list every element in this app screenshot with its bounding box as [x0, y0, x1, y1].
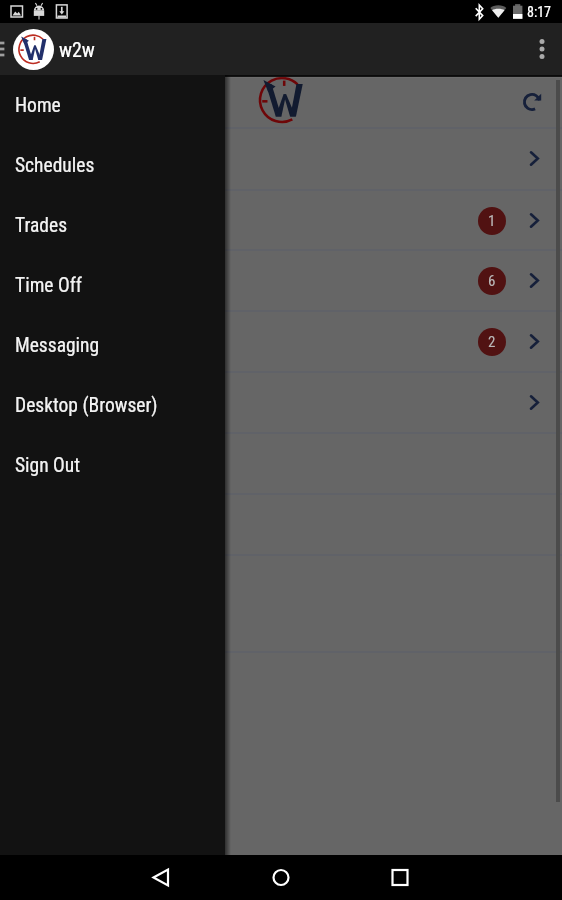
staticText: Messaging: [15, 334, 100, 357]
staticText: 8:17: [527, 4, 552, 20]
button[interactable]: More options: [514, 25, 562, 73]
button[interactable]: Messaging: [0, 315, 225, 375]
button[interactable]: Home: [0, 75, 225, 135]
button[interactable]: Refresh: [511, 81, 553, 123]
staticText: 2: [488, 333, 496, 351]
staticText: Schedules: [15, 154, 95, 177]
button[interactable]: Desktop (Browser): [0, 375, 225, 435]
staticText: 1: [488, 212, 496, 230]
staticText: Desktop (Browser): [15, 394, 158, 417]
button[interactable]: Trades: [0, 195, 225, 255]
button[interactable]: Home: [257, 855, 305, 900]
button[interactable]: Time Off: [0, 255, 225, 315]
button[interactable]: Open navigation drawer: [0, 23, 14, 75]
button[interactable]: Recent apps: [376, 855, 424, 900]
staticText: Trades: [15, 214, 68, 237]
button[interactable]: Sign Out: [0, 435, 225, 495]
button[interactable]: Schedules: [0, 135, 225, 195]
staticText: Time Off: [15, 274, 82, 297]
button[interactable]: Back: [137, 855, 185, 900]
staticText: Sign Out: [15, 454, 81, 477]
staticText: w2w: [59, 38, 95, 61]
staticText: Home: [15, 94, 61, 117]
staticText: 6: [488, 272, 496, 290]
